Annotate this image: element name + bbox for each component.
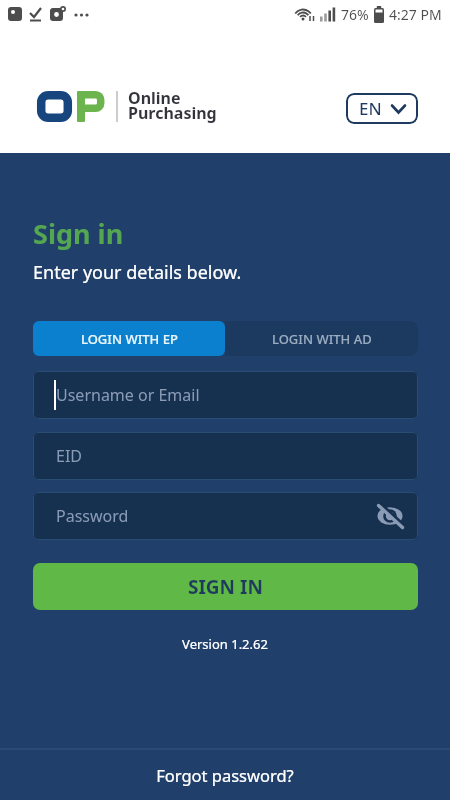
staticText: 4:27 PM [389,5,442,24]
staticText: EN [359,97,382,120]
staticText: 76% [341,5,369,24]
staticText: Version 1.2.62 [0,635,450,653]
staticText: EID [56,445,83,467]
button[interactable]: EN [346,93,418,124]
staticText: Username or Email [56,384,200,406]
staticText: Purchasing [128,102,217,124]
staticText: Password [56,505,129,527]
button[interactable]: Username or Email [33,371,418,419]
staticText: SIGN IN [188,574,263,600]
button[interactable]: SIGN IN [33,563,418,610]
button[interactable]: Forgot password? [0,764,450,786]
button[interactable]: LOGIN WITH EP [33,321,225,356]
button[interactable]: EID [33,432,418,480]
staticText: LOGIN WITH AD [272,330,372,348]
button[interactable]: Password [33,492,418,540]
staticText: Enter your details below. [33,260,242,285]
staticText: Online [128,87,181,109]
staticText: LOGIN WITH EP [81,330,178,348]
button[interactable]: LOGIN WITH AD [225,321,418,356]
staticText: Sign in [33,215,124,252]
